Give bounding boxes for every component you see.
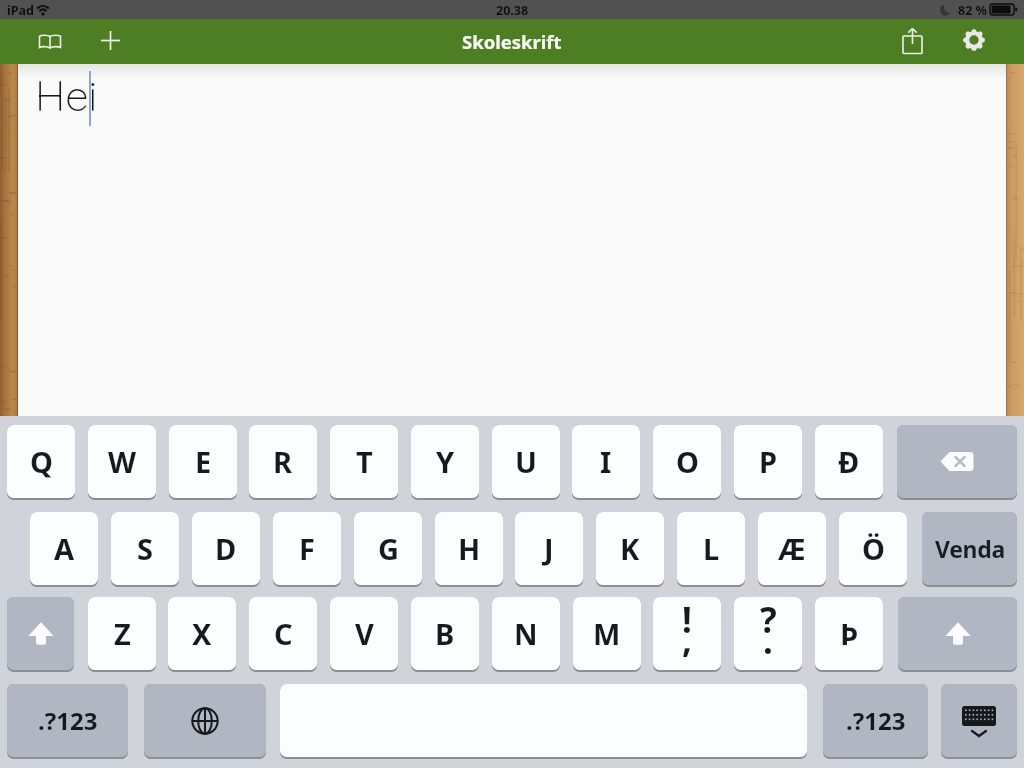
staticText: R — [273, 442, 293, 481]
staticText: C — [274, 614, 293, 653]
button[interactable]: .?123 — [7, 684, 128, 759]
staticText: K — [620, 529, 640, 568]
staticText: Hei — [35, 69, 98, 122]
staticText: T — [356, 442, 373, 481]
button[interactable]: C — [249, 597, 317, 672]
staticText: G — [378, 529, 399, 568]
button[interactable]: E — [169, 425, 237, 500]
button[interactable]: Q — [7, 425, 75, 500]
button[interactable] — [898, 28, 927, 55]
staticText: X — [192, 614, 212, 653]
staticText: A — [54, 529, 75, 568]
button[interactable]: H — [435, 512, 503, 587]
staticText: N — [514, 614, 538, 653]
button[interactable] — [897, 425, 1017, 500]
staticText: ! — [682, 596, 692, 644]
button[interactable] — [7, 597, 74, 672]
button[interactable]: .?123 — [823, 684, 928, 759]
button[interactable] — [101, 31, 120, 50]
button[interactable]: R — [249, 425, 317, 500]
button[interactable]: Ö — [839, 512, 907, 587]
button[interactable]: S — [111, 512, 179, 587]
staticText: U — [515, 442, 537, 481]
button[interactable]: J — [515, 512, 583, 587]
button[interactable]: L — [677, 512, 745, 587]
button[interactable]: G — [354, 512, 422, 587]
button[interactable] — [144, 684, 266, 759]
button[interactable]: ? — [734, 597, 802, 672]
staticText: Ð — [838, 442, 860, 481]
staticText: I — [600, 442, 612, 481]
staticText: . — [763, 617, 773, 665]
staticText: Þ — [840, 614, 859, 653]
button[interactable]: Æ — [758, 512, 826, 587]
staticText: V — [355, 614, 374, 653]
staticText: .?123 — [38, 704, 98, 737]
staticText: D — [215, 529, 237, 568]
staticText: E — [195, 442, 212, 481]
button[interactable]: T — [330, 425, 398, 500]
button[interactable]: M — [573, 597, 641, 672]
button[interactable]: Ð — [815, 425, 883, 500]
staticText: Æ — [778, 529, 806, 568]
button[interactable]: D — [192, 512, 260, 587]
button[interactable]: A — [30, 512, 98, 587]
staticText: P — [759, 442, 778, 481]
staticText: .?123 — [846, 704, 906, 737]
staticText: iPad — [7, 2, 34, 19]
button[interactable]: Z — [88, 597, 156, 672]
staticText: Q — [30, 442, 53, 481]
button[interactable] — [941, 684, 1017, 759]
staticText: O — [676, 442, 699, 481]
button[interactable] — [280, 684, 807, 759]
button[interactable]: W — [88, 425, 156, 500]
staticText: Skoleskrift — [462, 29, 562, 54]
button[interactable]: N — [492, 597, 560, 672]
staticText: H — [458, 529, 481, 568]
staticText: , — [682, 615, 692, 663]
staticText: 20.38 — [496, 2, 529, 19]
button[interactable]: B — [411, 597, 479, 672]
button[interactable]: Þ — [815, 597, 883, 672]
button[interactable]: K — [596, 512, 664, 587]
staticText: ? — [760, 596, 777, 644]
staticText: Z — [114, 614, 131, 653]
button[interactable]: U — [492, 425, 560, 500]
staticText: L — [703, 529, 720, 568]
button[interactable]: O — [653, 425, 721, 500]
button[interactable]: ! — [653, 597, 721, 672]
staticText: 82 % — [958, 2, 987, 19]
staticText: Venda — [935, 533, 1005, 564]
staticText: J — [544, 529, 554, 568]
button[interactable]: Y — [411, 425, 479, 500]
staticText: M — [593, 614, 621, 653]
button[interactable]: P — [734, 425, 802, 500]
button[interactable] — [898, 597, 1017, 672]
staticText: Y — [436, 442, 455, 481]
button[interactable]: F — [273, 512, 341, 587]
button[interactable]: I — [572, 425, 640, 500]
staticText: W — [108, 442, 137, 481]
staticText: Ö — [862, 529, 885, 568]
button[interactable] — [955, 21, 993, 59]
button[interactable]: Venda — [922, 512, 1017, 587]
staticText: F — [299, 529, 315, 568]
button[interactable] — [38, 34, 62, 51]
staticText: B — [435, 614, 455, 653]
button[interactable]: X — [168, 597, 236, 672]
staticText: S — [137, 529, 153, 568]
button[interactable]: V — [330, 597, 398, 672]
